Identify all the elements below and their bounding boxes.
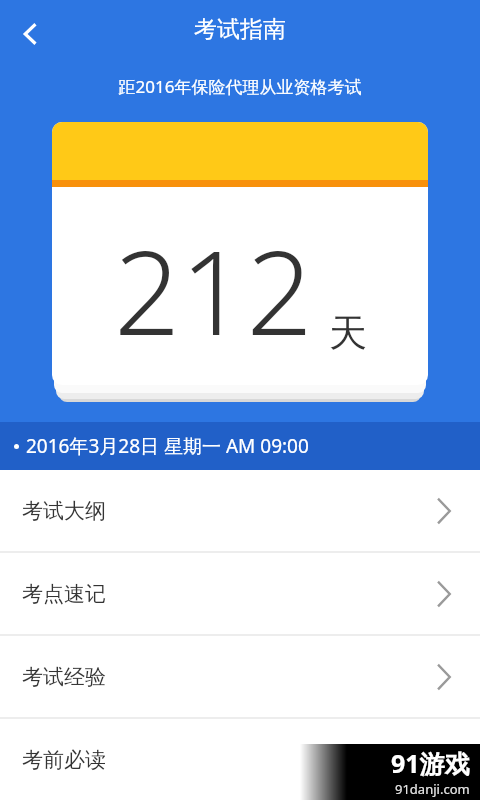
staticText: 天 [329,309,367,357]
staticText: 距2016年保险代理从业资格考试 [0,75,480,98]
staticText: 考试大纲 [22,498,106,524]
staticText: 考前必读 [22,747,106,773]
button[interactable]: Back [4,8,56,60]
button[interactable]: 考前必读 [0,719,480,800]
button[interactable]: 考试大纲 [0,470,480,551]
staticText: 91danji.com [395,780,470,798]
staticText: 91游戏 [391,746,470,780]
button[interactable]: 考试经验 [0,636,480,717]
staticText: 考点速记 [22,581,106,607]
staticText: 212 [114,211,313,369]
button[interactable]: 考点速记 [0,553,480,634]
staticText: 2016年3月28日 星期一 AM 09:00 [26,433,309,459]
staticText: 考试指南 [0,15,480,44]
staticText: 考试经验 [22,664,106,690]
